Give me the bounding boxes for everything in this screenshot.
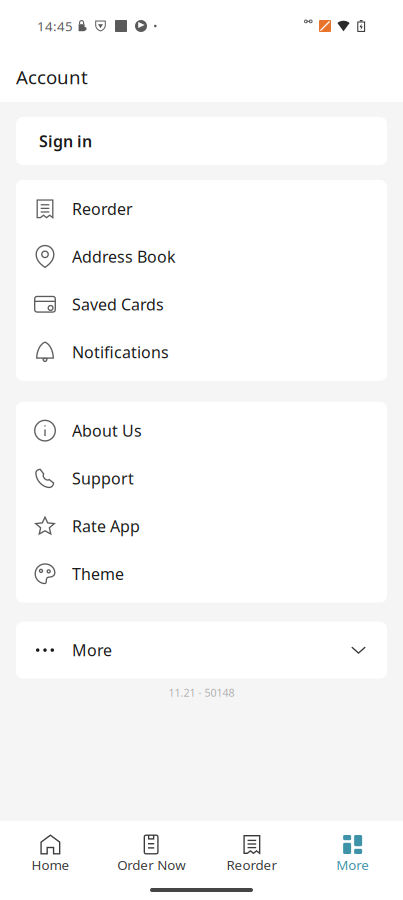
staticText: Theme [72,563,124,584]
staticText: Home [31,856,69,874]
button[interactable]: Reorder [201,821,302,888]
staticText: More [336,856,369,874]
staticText: Reorder [72,198,133,219]
staticText: Sign in [39,130,92,152]
button[interactable]: Saved Cards [16,280,387,328]
button[interactable]: About Us [16,407,387,454]
button[interactable]: Support [16,454,387,502]
button[interactable]: More [302,821,403,888]
button[interactable]: Notifications [16,328,387,376]
staticText: Reorder [226,856,277,874]
staticText: About Us [72,420,142,441]
button[interactable]: Theme [16,550,387,598]
button[interactable]: Rate App [16,502,387,550]
staticText: Rate App [72,515,140,537]
staticText: Address Book [72,246,176,267]
staticText: 14:45 [37,17,73,35]
button[interactable]: Sign in [16,117,387,165]
staticText: Saved Cards [72,294,164,315]
staticText: Notifications [72,341,169,362]
staticText: 11.21 · 50148 [168,686,234,700]
staticText: Order Now [117,856,185,874]
staticText: More [72,639,112,661]
staticText: Support [72,468,134,489]
button[interactable]: Order Now [101,821,202,888]
button[interactable]: More [16,622,387,679]
button[interactable]: Home [0,821,101,888]
staticText: Account [16,65,88,89]
button[interactable]: Reorder [16,185,387,233]
button[interactable]: Address Book [16,233,387,280]
